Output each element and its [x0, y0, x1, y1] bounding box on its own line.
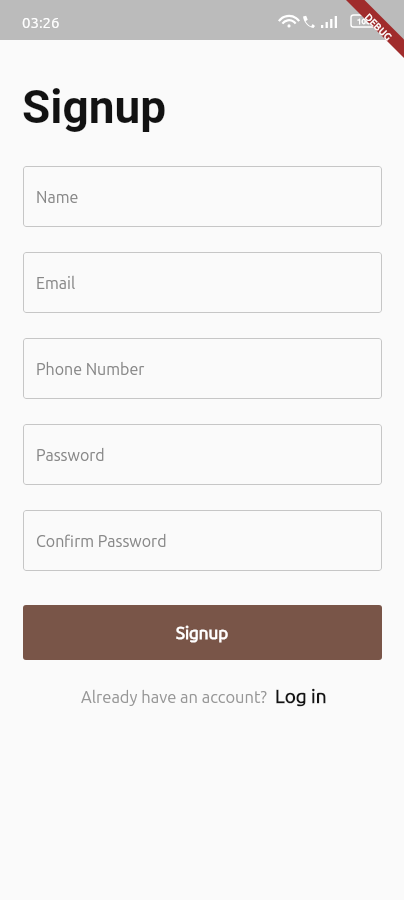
staticText: Signup	[176, 623, 229, 642]
button[interactable]: Email	[23, 252, 382, 313]
other: Mobile signal	[321, 16, 337, 28]
staticText: 03:26	[22, 14, 60, 31]
staticText: Email	[36, 274, 76, 292]
staticText: Confirm Password	[36, 532, 167, 550]
staticText: DEBUG	[363, 11, 394, 43]
button[interactable]: Log in	[275, 685, 327, 706]
staticText: Already have an account?	[81, 688, 267, 706]
other: Calls	[302, 15, 315, 28]
staticText: Name	[36, 188, 79, 206]
other: Wi-Fi	[281, 15, 297, 28]
other: Battery	[351, 15, 379, 27]
button[interactable]: Signup	[23, 605, 382, 660]
button[interactable]: Password	[23, 424, 382, 485]
staticText: Phone Number	[36, 360, 145, 378]
staticText: 100	[357, 17, 371, 26]
staticText: Log in	[275, 685, 327, 706]
button[interactable]: Name	[23, 166, 382, 227]
button[interactable]: Phone Number	[23, 338, 382, 399]
button[interactable]: Confirm Password	[23, 510, 382, 571]
other: Debug banner	[332, 0, 404, 72]
staticText: Password	[36, 446, 105, 464]
staticText: Signup	[22, 80, 167, 134]
